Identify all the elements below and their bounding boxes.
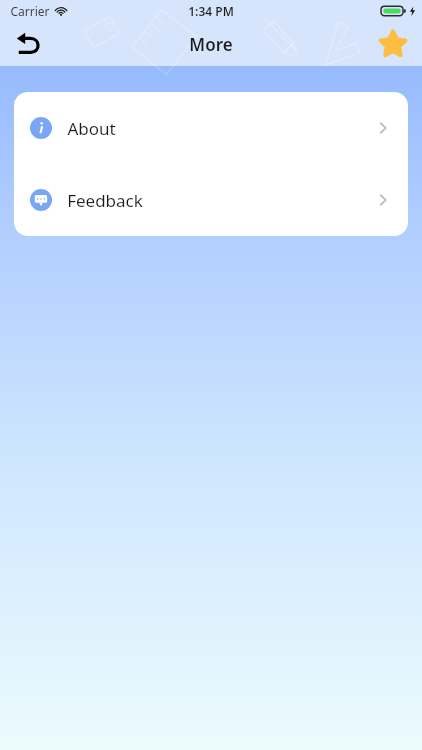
staticText: About xyxy=(67,117,116,140)
button[interactable]: Feedback xyxy=(14,164,408,236)
staticText: More xyxy=(189,33,233,56)
button[interactable]: Back xyxy=(6,22,50,66)
staticText: 1:34 PM xyxy=(188,3,234,19)
button[interactable]: Favorites xyxy=(372,23,414,65)
staticText: Feedback xyxy=(67,189,143,212)
button[interactable]: About xyxy=(14,92,408,164)
staticText: Carrier xyxy=(10,3,50,19)
